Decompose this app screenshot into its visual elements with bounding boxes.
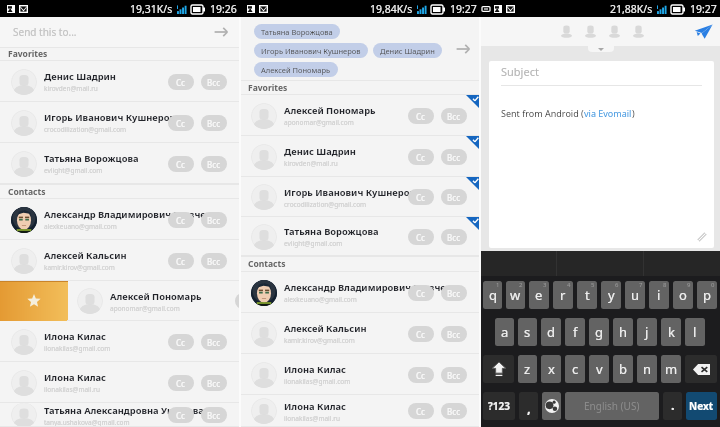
button[interactable]: Илона Килас bbox=[240, 354, 480, 395]
button[interactable]: Cc bbox=[168, 156, 194, 172]
button[interactable]: e bbox=[529, 281, 549, 309]
button[interactable]: d bbox=[541, 318, 561, 346]
button[interactable]: Cc bbox=[168, 334, 194, 350]
button[interactable]: Bcc bbox=[441, 189, 467, 205]
button[interactable]: Backspace bbox=[685, 355, 717, 383]
staticText: kamir.kirov@gmail.com bbox=[284, 336, 355, 345]
button[interactable]: f bbox=[565, 318, 585, 346]
button[interactable]: Send bbox=[694, 22, 713, 41]
button[interactable]: Bcc bbox=[201, 407, 227, 423]
button[interactable]: v bbox=[589, 355, 609, 383]
button[interactable]: Bcc bbox=[201, 74, 227, 90]
button[interactable]: s bbox=[518, 318, 537, 346]
button[interactable]: Bcc bbox=[441, 149, 467, 165]
button[interactable]: Bcc bbox=[201, 334, 227, 350]
button[interactable]: ?123 bbox=[483, 392, 515, 420]
button[interactable]: y bbox=[601, 281, 621, 309]
button[interactable]: p bbox=[697, 281, 717, 309]
button[interactable]: Татьяна Ворожцова bbox=[0, 143, 240, 184]
button[interactable]: Cc bbox=[408, 189, 434, 205]
button[interactable]: Cc bbox=[168, 375, 194, 391]
button[interactable]: Next bbox=[686, 392, 717, 420]
button[interactable]: n bbox=[637, 355, 657, 383]
button[interactable]: k bbox=[661, 318, 681, 346]
button[interactable]: z bbox=[518, 355, 537, 383]
button[interactable]: Алексей Пономарь bbox=[254, 62, 338, 77]
button[interactable]: Илона Килас bbox=[0, 321, 240, 362]
button[interactable]: Bcc bbox=[201, 212, 227, 228]
button[interactable]: q bbox=[483, 281, 502, 309]
button[interactable]: Денис Шадрин bbox=[373, 43, 442, 58]
button[interactable]: Татьяна Александровна Ушакова bbox=[0, 403, 240, 427]
button[interactable]: Bcc bbox=[441, 229, 467, 245]
button[interactable]: Bcc bbox=[201, 375, 227, 391]
button[interactable]: Cc bbox=[408, 285, 434, 301]
button[interactable]: m bbox=[661, 355, 681, 383]
button[interactable]: Cc bbox=[168, 74, 194, 90]
button[interactable]: Илона Килас bbox=[0, 362, 240, 403]
button[interactable]: Игорь Иванович Кушнеров bbox=[0, 102, 240, 143]
button[interactable]: Bcc bbox=[441, 326, 467, 342]
button[interactable]: Bcc bbox=[441, 403, 467, 419]
button[interactable]: Алексей Пономарь bbox=[240, 95, 480, 136]
button[interactable]: Cc bbox=[408, 149, 434, 165]
button[interactable]: Cc bbox=[408, 326, 434, 342]
staticText: Cc bbox=[416, 152, 426, 163]
staticText: , bbox=[527, 399, 531, 417]
button[interactable]: Илона Килас bbox=[240, 395, 480, 427]
button[interactable]: b bbox=[613, 355, 633, 383]
button[interactable]: Татьяна Ворожцова bbox=[240, 217, 480, 256]
button[interactable]: o bbox=[673, 281, 693, 309]
button[interactable]: Cc bbox=[408, 108, 434, 124]
button[interactable]: i bbox=[649, 281, 669, 309]
button[interactable]: Игорь Иванович Кушнеров bbox=[254, 43, 368, 58]
button[interactable]: Shift bbox=[483, 355, 514, 383]
button[interactable]: Татьяна Ворожцова bbox=[254, 24, 340, 39]
button[interactable]: Алексей Пономарь bbox=[67, 281, 240, 321]
button[interactable]: c bbox=[565, 355, 585, 383]
button[interactable]: Bcc bbox=[201, 253, 227, 269]
button[interactable]: Cc bbox=[408, 367, 434, 383]
button[interactable]: w bbox=[506, 281, 525, 309]
button[interactable]: j bbox=[637, 318, 657, 346]
button[interactable]: Bcc bbox=[441, 285, 467, 301]
button[interactable]: l bbox=[685, 318, 705, 346]
button[interactable]: Александр Владимирович Шевченко bbox=[240, 272, 480, 313]
button[interactable]: Алексей Кальсин bbox=[240, 313, 480, 354]
button[interactable]: , bbox=[519, 392, 538, 420]
button[interactable]: Cc bbox=[168, 115, 194, 131]
button[interactable]: Денис Шадрин bbox=[240, 136, 480, 177]
button[interactable]: Cc bbox=[168, 253, 194, 269]
button[interactable]: English (US) bbox=[565, 392, 659, 420]
button[interactable]: Change language bbox=[542, 392, 561, 420]
button[interactable]: g bbox=[589, 318, 609, 346]
button[interactable]: Bcc bbox=[441, 367, 467, 383]
button[interactable]: Александр Владимирович Шевченко bbox=[0, 199, 240, 240]
button[interactable]: u bbox=[625, 281, 645, 309]
button[interactable]: Cc bbox=[408, 403, 434, 419]
button[interactable]: Bcc bbox=[201, 115, 227, 131]
button[interactable]: . bbox=[663, 392, 682, 420]
button[interactable]: t bbox=[577, 281, 597, 309]
button[interactable]: Send bbox=[213, 24, 229, 40]
button[interactable]: Денис Шадрин bbox=[0, 61, 240, 102]
staticText: alexkeuano@gmail.com bbox=[284, 295, 357, 304]
button[interactable]: Send bbox=[455, 41, 471, 57]
button[interactable]: r bbox=[553, 281, 573, 309]
button[interactable]: h bbox=[613, 318, 633, 346]
button[interactable]: Cc bbox=[168, 407, 194, 423]
button[interactable]: Expand recipients bbox=[588, 46, 614, 52]
button[interactable]: Add to favorites bbox=[0, 281, 68, 321]
staticText: Bcc bbox=[447, 406, 461, 417]
button[interactable]: Cc bbox=[408, 229, 434, 245]
button[interactable]: Cc bbox=[168, 212, 194, 228]
button[interactable]: Игорь Иванович Кушнеров bbox=[240, 177, 480, 217]
button[interactable]: x bbox=[541, 355, 561, 383]
button[interactable]: Bcc bbox=[201, 156, 227, 172]
staticText: Денис Шадрин bbox=[44, 70, 116, 83]
button[interactable]: Bcc bbox=[441, 108, 467, 124]
button[interactable]: a bbox=[495, 318, 514, 346]
button[interactable]: Attach bbox=[696, 231, 708, 243]
button[interactable]: Алексей Кальсин bbox=[0, 240, 240, 281]
button[interactable]: Cc bbox=[235, 293, 240, 309]
